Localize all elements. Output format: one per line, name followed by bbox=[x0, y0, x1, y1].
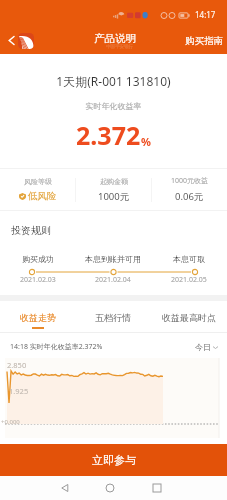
button[interactable]: 立即参与 bbox=[0, 444, 227, 476]
staticText: 本息可取 bbox=[173, 254, 205, 264]
staticText: 实时年化收益率 bbox=[0, 101, 227, 111]
button[interactable]: Back bbox=[55, 478, 75, 498]
staticText: 2021.02.04 bbox=[95, 275, 131, 285]
staticText: 1天期(R-001 131810) bbox=[0, 73, 227, 89]
staticText: 1000元收益 bbox=[171, 176, 209, 186]
staticText: 2.850 bbox=[7, 360, 27, 370]
staticText: 1.925 bbox=[9, 386, 29, 396]
button[interactable]: 购买指南 bbox=[185, 35, 227, 47]
staticText: 今日 bbox=[195, 342, 211, 352]
button[interactable]: 今日 bbox=[195, 342, 218, 352]
staticText: 购买指南 bbox=[185, 35, 223, 47]
staticText: 0.06元 bbox=[175, 190, 204, 203]
staticText: 2021.02.03 bbox=[20, 275, 56, 285]
staticText: 收益最高时点 bbox=[162, 312, 216, 323]
button[interactable]: Back bbox=[3, 32, 19, 48]
button[interactable]: 收益走势 bbox=[0, 301, 75, 332]
staticText: 产品说明 bbox=[94, 32, 136, 45]
staticText: 14:18 实时年化收益率2.372% bbox=[10, 342, 103, 352]
button[interactable]: Recent apps bbox=[147, 478, 167, 498]
staticText: 中国平安银行 bbox=[106, 44, 133, 50]
staticText: 立即参与 bbox=[92, 453, 136, 467]
staticText: 起购金额 bbox=[100, 177, 128, 186]
staticText: 1000元 bbox=[98, 190, 130, 203]
staticText: 收益走势 bbox=[20, 312, 56, 323]
staticText: 2021.02.05 bbox=[171, 275, 207, 285]
button[interactable]: 五档行情 bbox=[75, 301, 151, 332]
staticText: +0.000 bbox=[1, 418, 20, 426]
staticText: 低风险 bbox=[28, 190, 57, 202]
staticText: 本息到账并可用 bbox=[85, 254, 141, 264]
staticText: 2.372 bbox=[76, 118, 141, 152]
staticText: 购买成功 bbox=[22, 254, 54, 264]
button[interactable]: Home bbox=[100, 478, 120, 498]
staticText: 14:17 bbox=[195, 9, 216, 20]
staticText: % bbox=[141, 134, 151, 149]
staticText: 五档行情 bbox=[95, 312, 131, 323]
button[interactable]: 收益最高时点 bbox=[151, 301, 227, 332]
staticText: 风险等级 bbox=[24, 177, 52, 186]
staticText: 投资规则 bbox=[11, 224, 51, 237]
